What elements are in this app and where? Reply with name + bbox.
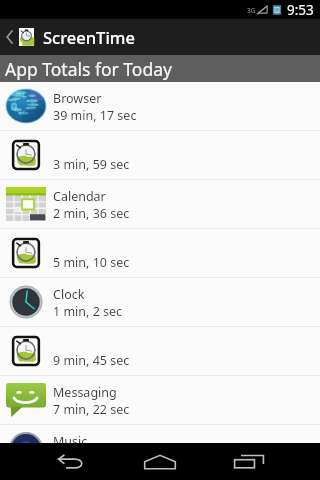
staticText: ScreenTime bbox=[43, 26, 135, 48]
staticText: 2 min, 36 sec bbox=[53, 205, 130, 222]
button[interactable]: Clock bbox=[0, 278, 320, 327]
button[interactable]: 3 min, 59 sec bbox=[0, 131, 320, 180]
staticText: Clock bbox=[53, 286, 85, 303]
staticText: Music bbox=[53, 433, 88, 443]
staticText: Browser bbox=[53, 90, 102, 107]
staticText: 5 min, 10 sec bbox=[53, 254, 130, 271]
button[interactable]: Back bbox=[32, 443, 108, 480]
staticText: 9 min, 45 sec bbox=[53, 352, 130, 369]
button[interactable]: Home bbox=[122, 443, 198, 480]
button[interactable]: 9 min, 45 sec bbox=[0, 327, 320, 376]
button[interactable]: Music bbox=[0, 425, 320, 443]
staticText: 3G bbox=[247, 6, 256, 15]
button[interactable]: 5 min, 10 sec bbox=[0, 229, 320, 278]
staticText: Messaging bbox=[53, 384, 117, 401]
staticText: 3 min, 59 sec bbox=[53, 156, 130, 173]
staticText: 9:53 bbox=[287, 1, 314, 19]
button[interactable]: Browser bbox=[0, 82, 320, 131]
button[interactable]: Navigate up bbox=[0, 19, 19, 55]
staticText: Calendar bbox=[53, 188, 106, 205]
button[interactable]: Messaging bbox=[0, 376, 320, 425]
button[interactable]: Recent apps bbox=[211, 443, 287, 480]
staticText: 39 min, 17 sec bbox=[53, 107, 137, 124]
staticText: 7 min, 22 sec bbox=[53, 401, 130, 418]
staticText: App Totals for Today bbox=[5, 57, 172, 81]
button[interactable]: Calendar bbox=[0, 180, 320, 229]
staticText: 1 min, 2 sec bbox=[53, 303, 123, 320]
